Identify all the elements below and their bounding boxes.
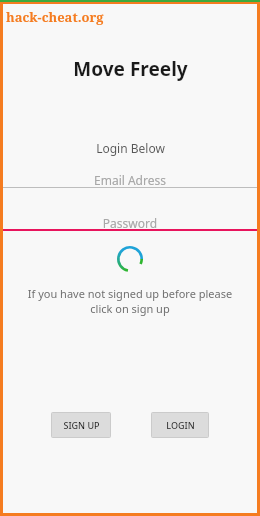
other: Loading bbox=[117, 246, 143, 272]
staticText: Move Freely bbox=[73, 56, 188, 82]
staticText: If you have not signed up before please … bbox=[3, 286, 257, 316]
button[interactable]: SIGN UP bbox=[52, 413, 110, 437]
staticText: LOGIN bbox=[166, 419, 195, 431]
button[interactable]: Password bbox=[3, 215, 257, 231]
staticText: SIGN UP bbox=[63, 419, 100, 431]
staticText: Password bbox=[3, 215, 257, 231]
staticText: Login Below bbox=[96, 140, 165, 156]
staticText: Email Adress bbox=[3, 172, 257, 188]
button[interactable]: Email Adress bbox=[3, 172, 257, 188]
staticText: hack-cheat.org bbox=[6, 8, 104, 26]
button[interactable]: LOGIN bbox=[152, 413, 208, 437]
